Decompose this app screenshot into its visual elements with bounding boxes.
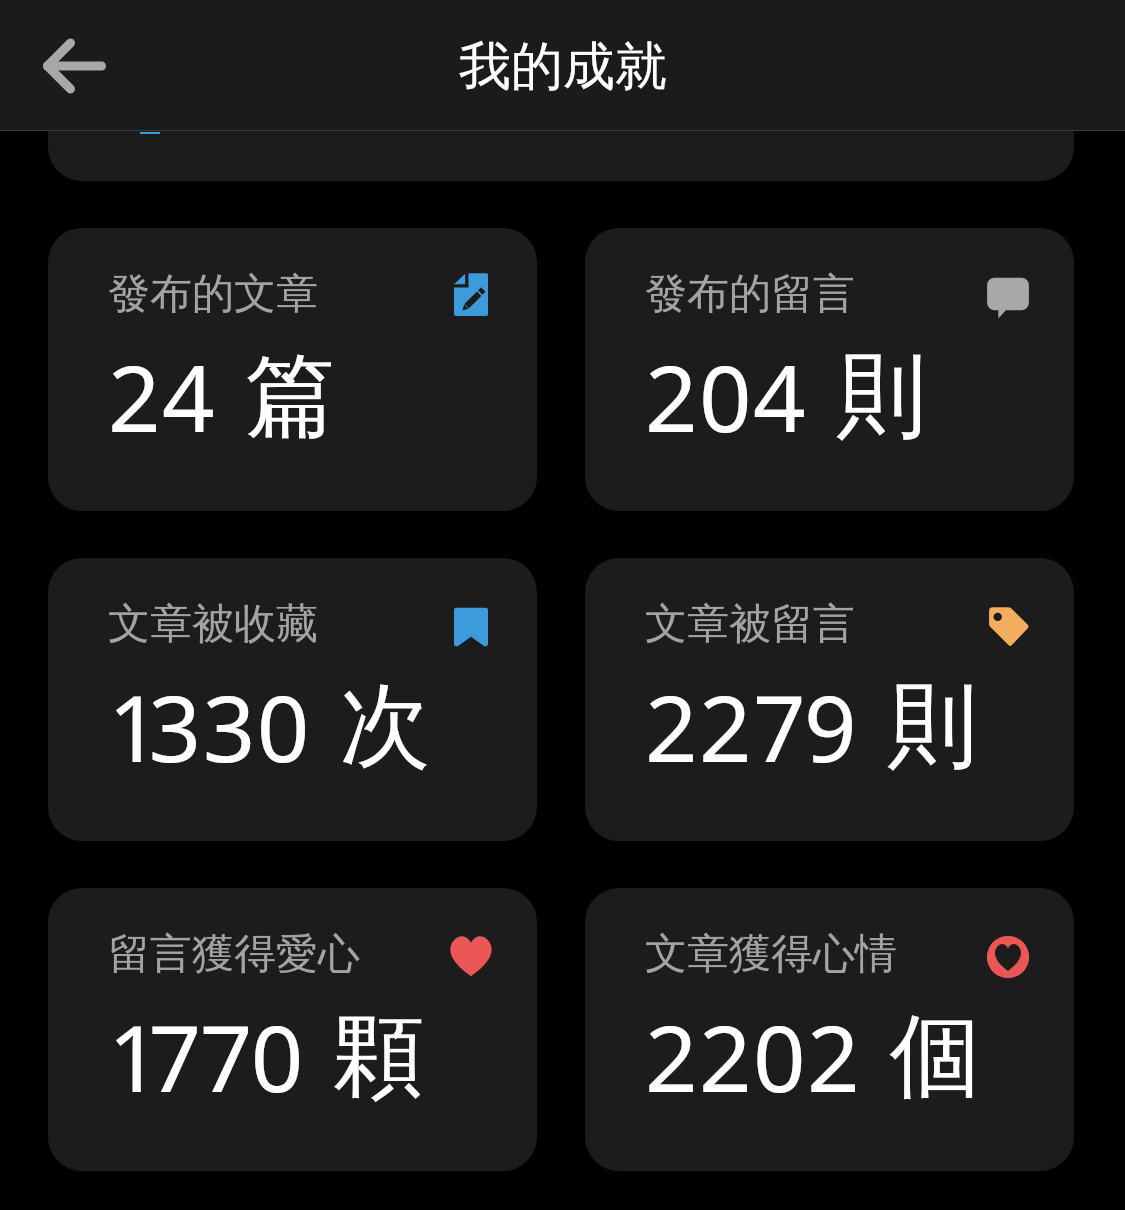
button[interactable]: 文章被留言 bbox=[585, 558, 1074, 841]
staticText: 留言獲得愛心 bbox=[108, 928, 360, 981]
button[interactable] bbox=[48, 131, 1074, 181]
button[interactable]: 文章被收藏 bbox=[48, 558, 537, 841]
staticText: 文章被收藏 bbox=[108, 598, 318, 651]
staticText: 1770 顆 bbox=[108, 994, 425, 1119]
button[interactable]: 留言獲得愛心 bbox=[48, 888, 537, 1171]
button[interactable]: 發布的留言 bbox=[585, 228, 1074, 511]
staticText: 204 則 bbox=[645, 334, 927, 459]
button[interactable]: Back bbox=[20, 12, 128, 120]
staticText: 文章被留言 bbox=[645, 598, 855, 651]
staticText: 1330 次 bbox=[108, 664, 431, 789]
staticText: 2279 則 bbox=[645, 664, 979, 789]
staticText: 2202 個 bbox=[645, 994, 982, 1119]
staticText: 24 篇 bbox=[108, 334, 336, 459]
staticText: 發布的留言 bbox=[645, 268, 855, 321]
button[interactable]: 文章獲得心情 bbox=[585, 888, 1074, 1171]
staticText: 發布的文章 bbox=[108, 268, 318, 321]
staticText: 文章獲得心情 bbox=[645, 928, 897, 981]
button[interactable]: 發布的文章 bbox=[48, 228, 537, 511]
staticText: 我的成就 bbox=[459, 34, 667, 100]
